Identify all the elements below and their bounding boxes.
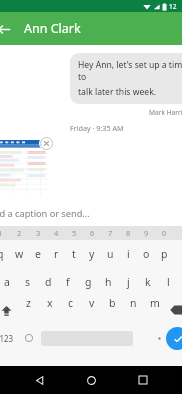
staticText: Friday · 9:35 AM — [70, 123, 124, 133]
button[interactable]: Hey Ann, let's set up a time to — [70, 53, 182, 104]
button[interactable]: 7 — [101, 228, 119, 238]
staticText: talk later this week. — [78, 86, 157, 98]
button[interactable]: l — [158, 275, 178, 289]
staticText: e — [35, 247, 41, 261]
button[interactable]: 8 — [119, 228, 137, 238]
button[interactable]: Shift — [0, 298, 18, 322]
button[interactable]: r — [47, 247, 65, 261]
button[interactable]: 9 — [137, 228, 155, 238]
button[interactable]: o — [137, 247, 155, 261]
staticText: 9 — [144, 228, 149, 238]
button[interactable]: y — [83, 247, 101, 261]
button[interactable]: 0 — [155, 228, 173, 238]
staticText: Mark Harris — [149, 108, 182, 117]
staticText: n — [130, 296, 137, 310]
staticText: a — [4, 275, 10, 289]
button[interactable]: Period — [154, 333, 164, 343]
staticText: d — [45, 275, 52, 289]
staticText: j — [127, 275, 130, 289]
staticText: s — [25, 275, 31, 289]
button[interactable]: Recents — [130, 367, 156, 393]
staticText: 7 — [108, 228, 113, 238]
button[interactable]: 1 — [0, 228, 10, 238]
staticText: 1 — [0, 228, 3, 238]
staticText: Ann Clark — [24, 20, 81, 37]
button[interactable]: Send — [166, 327, 182, 350]
button[interactable]: x — [39, 296, 60, 310]
staticText: w — [15, 247, 24, 261]
button[interactable]: g — [78, 275, 98, 289]
button[interactable]: j — [118, 275, 138, 289]
button[interactable]: Back — [0, 16, 17, 42]
button[interactable]: 5 — [65, 228, 83, 238]
button[interactable]: s — [17, 275, 38, 289]
button[interactable]: i — [119, 247, 137, 261]
button[interactable]: Remove attachment — [39, 136, 54, 151]
staticText: h — [105, 275, 112, 289]
button[interactable]: f — [58, 275, 78, 289]
staticText: x — [47, 296, 53, 310]
staticText: 4 — [54, 228, 59, 238]
staticText: m — [150, 296, 160, 310]
staticText: k — [145, 275, 151, 289]
button[interactable]: p — [155, 247, 173, 261]
button[interactable]: Ann Clark — [24, 20, 81, 37]
button[interactable]: 4 — [47, 228, 65, 238]
button[interactable]: Backspace — [164, 298, 182, 322]
staticText: t — [72, 247, 76, 261]
button[interactable]: Add a caption or send... — [0, 200, 182, 226]
button[interactable]: 6 — [83, 228, 101, 238]
staticText: 2 — [17, 228, 22, 238]
staticText: z — [26, 296, 31, 310]
staticText: ?123 — [0, 333, 14, 344]
button[interactable]: ?123 — [0, 327, 18, 349]
staticText: g — [85, 275, 92, 289]
staticText: 8 — [126, 228, 131, 238]
staticText: u — [107, 247, 114, 261]
button[interactable]: m — [144, 296, 165, 310]
staticText: c — [68, 296, 74, 310]
button[interactable]: t — [65, 247, 83, 261]
staticText: 3 — [36, 228, 41, 238]
button[interactable]: e — [29, 247, 47, 261]
button[interactable]: 2 — [10, 228, 29, 238]
staticText: i — [127, 247, 130, 261]
staticText: 5 — [72, 228, 77, 238]
staticText: r — [54, 247, 59, 261]
staticText: 6 — [90, 228, 95, 238]
button[interactable]: n — [123, 296, 144, 310]
button[interactable]: u — [101, 247, 119, 261]
button[interactable]: Home — [78, 367, 104, 393]
button[interactable]: h — [98, 275, 118, 289]
staticText: b — [109, 296, 116, 310]
button[interactable]: w — [10, 247, 29, 261]
staticText: 12 — [169, 2, 177, 11]
staticText: v — [89, 296, 95, 310]
staticText: p — [161, 247, 168, 261]
staticText: q — [0, 247, 4, 261]
button[interactable]: Back — [26, 367, 52, 393]
staticText: 0 — [162, 228, 167, 238]
staticText: f — [66, 275, 70, 289]
button[interactable]: z — [17, 296, 39, 310]
staticText: l — [167, 275, 170, 289]
button[interactable]: d — [38, 275, 58, 289]
button[interactable]: q — [0, 247, 10, 261]
staticText: Add a caption or send... — [0, 207, 90, 220]
button[interactable] — [0, 140, 48, 195]
button[interactable]: Emoji — [24, 333, 34, 343]
button[interactable]: b — [102, 296, 123, 310]
staticText: Hey Ann, let's set up a time to — [78, 59, 182, 83]
staticText: y — [89, 247, 95, 261]
button[interactable]: a — [0, 275, 17, 289]
button[interactable]: v — [81, 296, 102, 310]
button[interactable]: k — [138, 275, 158, 289]
staticText: o — [143, 247, 150, 261]
button[interactable]: 3 — [29, 228, 47, 238]
button[interactable]: c — [60, 296, 81, 310]
